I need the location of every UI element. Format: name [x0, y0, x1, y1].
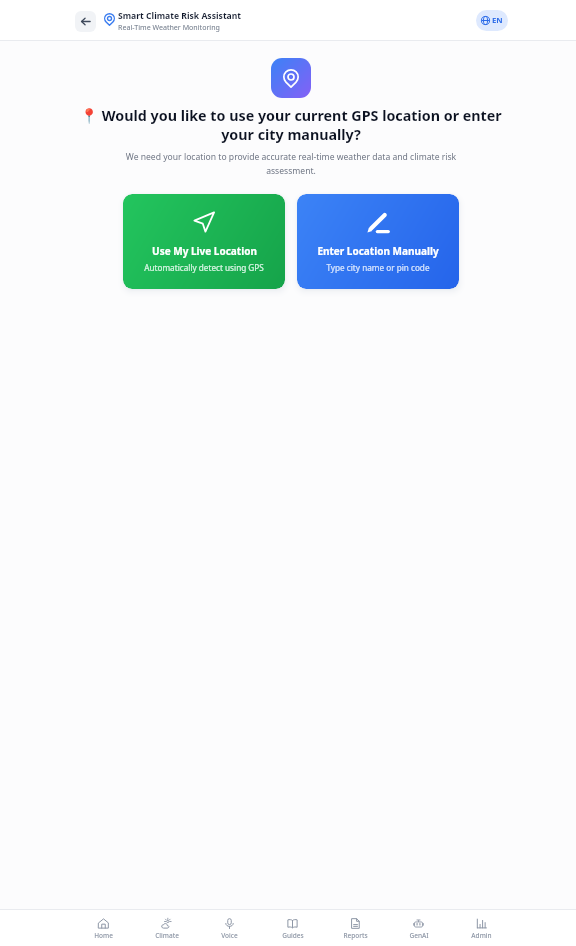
staticText: 📍 Would you like to use your current GPS… [69, 106, 513, 144]
staticText: Enter Location Manually [317, 244, 439, 258]
staticText: Automatically detect using GPS [144, 262, 264, 273]
button[interactable]: Reports [324, 918, 387, 940]
button[interactable]: Use My Live Location [123, 194, 285, 289]
button[interactable]: Voice [198, 918, 261, 940]
staticText: We need your location to provide accurat… [124, 151, 458, 177]
staticText: Voice [221, 931, 238, 940]
button[interactable]: Back [75, 11, 96, 32]
staticText: Guides [282, 931, 304, 940]
button[interactable]: Home [71, 918, 135, 940]
staticText: Real-Time Weather Monitoring [118, 22, 220, 32]
button[interactable]: Climate [135, 918, 198, 940]
button[interactable]: Enter Location Manually [297, 194, 459, 289]
staticText: Climate [155, 931, 179, 940]
staticText: Smart Climate Risk Assistant [118, 10, 242, 22]
staticText: GenAI [409, 931, 429, 940]
staticText: Admin [471, 931, 492, 940]
staticText: Type city name or pin code [326, 262, 430, 273]
button[interactable]: GenAI [387, 918, 450, 940]
staticText: EN [492, 15, 503, 26]
staticText: Home [94, 931, 113, 940]
staticText: Reports [343, 931, 368, 940]
button[interactable]: Admin [450, 918, 513, 940]
staticText: Use My Live Location [152, 244, 257, 258]
button[interactable]: Guides [261, 918, 324, 940]
button[interactable]: EN [476, 10, 508, 31]
